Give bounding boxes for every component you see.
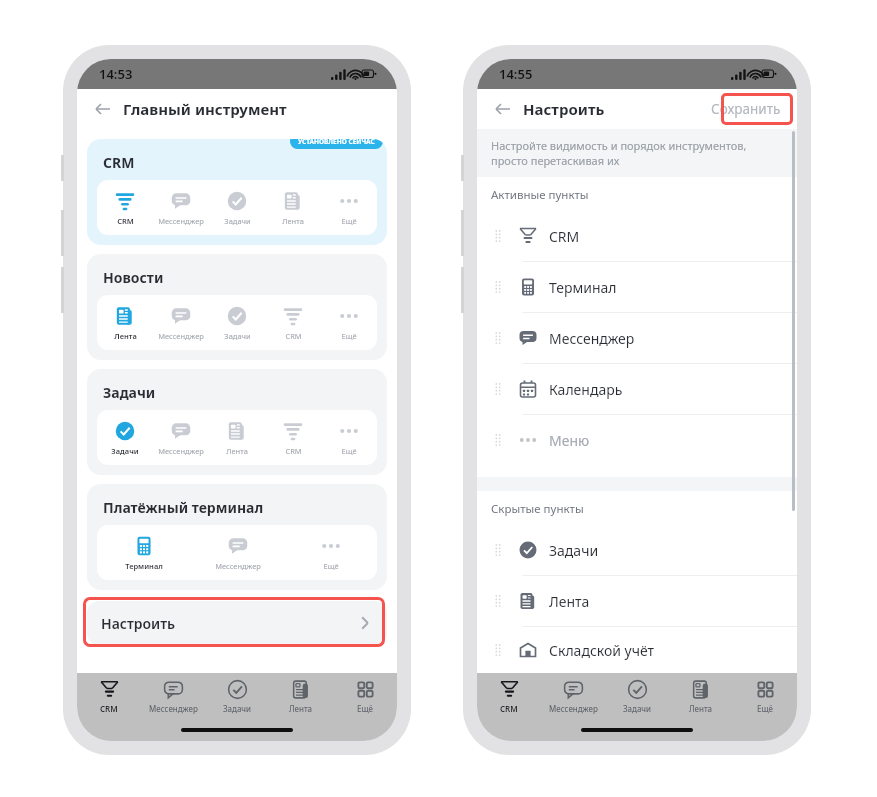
staticText: Настроить [523, 99, 605, 119]
staticText: Ещё [341, 446, 357, 456]
button[interactable]: Мессенджер [541, 678, 605, 719]
staticText: Мессенджер [158, 216, 204, 226]
staticText: Задачи [224, 216, 251, 226]
staticText: Лента [549, 592, 590, 611]
staticText: CRM [117, 216, 134, 226]
staticText: Мессенджер [158, 446, 204, 456]
staticText: Мессенджер [215, 561, 261, 571]
staticText: Терминал [549, 278, 617, 297]
staticText: CRM [285, 446, 302, 456]
button[interactable]: Назад [489, 95, 517, 123]
button[interactable]: Задачи [87, 369, 387, 475]
staticText: Задачи [111, 446, 139, 456]
staticText: Лента [114, 331, 137, 341]
staticText: Сохранить [711, 100, 781, 118]
button[interactable]: Новости [87, 254, 387, 360]
staticText: Складской учёт [549, 641, 655, 660]
staticText: 14:53 [99, 65, 133, 83]
button[interactable]: Задачи [477, 525, 797, 575]
staticText: CRM [103, 153, 135, 172]
button[interactable]: Терминал [477, 262, 797, 312]
button[interactable]: CRM [87, 139, 387, 245]
staticText: Ещё [323, 561, 339, 571]
staticText: CRM [285, 331, 302, 341]
staticText: CRM [100, 703, 118, 714]
staticText: Платёжный терминал [103, 498, 264, 517]
button[interactable]: Задачи [205, 678, 269, 719]
button[interactable]: CRM [477, 211, 797, 261]
button[interactable]: Мессенджер [141, 678, 205, 719]
staticText: CRM [549, 227, 580, 246]
button[interactable]: Ещё [333, 678, 397, 719]
button[interactable]: CRM [477, 678, 541, 719]
staticText: 14:55 [499, 65, 533, 83]
staticText: Задачи [549, 541, 599, 560]
staticText: Лента [289, 703, 313, 714]
staticText: Задачи [623, 703, 652, 714]
staticText: Мессенджер [158, 331, 204, 341]
button[interactable]: Сохранить [705, 96, 787, 122]
staticText: Мессенджер [549, 703, 598, 714]
button[interactable]: Меню [477, 415, 797, 465]
staticText: Лента [282, 216, 304, 226]
button[interactable]: Мессенджер [477, 313, 797, 363]
staticText: CRM [500, 703, 518, 714]
button[interactable]: Лента [669, 678, 733, 719]
staticText: Настроить [101, 614, 176, 633]
staticText: Ещё [357, 703, 374, 714]
staticText: Ещё [341, 216, 357, 226]
staticText: Задачи [103, 383, 156, 402]
staticText: Задачи [224, 331, 251, 341]
staticText: Ещё [341, 331, 357, 341]
staticText: Скрытые пункты [491, 501, 584, 517]
button[interactable]: Настроить [87, 601, 387, 645]
staticText: Мессенджер [549, 329, 635, 348]
staticText: Задачи [223, 703, 252, 714]
staticText: Меню [549, 431, 590, 450]
staticText: УСТАНОВЛЕНО СЕЙЧАС [298, 139, 375, 146]
button[interactable]: Ещё [733, 678, 797, 719]
button[interactable]: Календарь [477, 364, 797, 414]
staticText: Ещё [757, 703, 774, 714]
staticText: Лента [689, 703, 713, 714]
button[interactable]: Платёжный терминал [87, 484, 387, 590]
staticText: Главный инструмент [123, 99, 287, 119]
staticText: Терминал [125, 561, 163, 571]
staticText: Календарь [549, 380, 623, 399]
button[interactable]: Назад [89, 95, 117, 123]
button[interactable]: CRM [77, 678, 141, 719]
button[interactable]: Складской учёт [477, 627, 797, 673]
staticText: Новости [103, 268, 164, 287]
staticText: Лента [226, 446, 248, 456]
staticText: Настройте видимость и порядок инструмент… [491, 138, 783, 168]
button[interactable]: Задачи [605, 678, 669, 719]
staticText: Мессенджер [149, 703, 198, 714]
button[interactable]: Лента [477, 576, 797, 626]
button[interactable]: Лента [269, 678, 333, 719]
staticText: Активные пункты [491, 187, 589, 203]
